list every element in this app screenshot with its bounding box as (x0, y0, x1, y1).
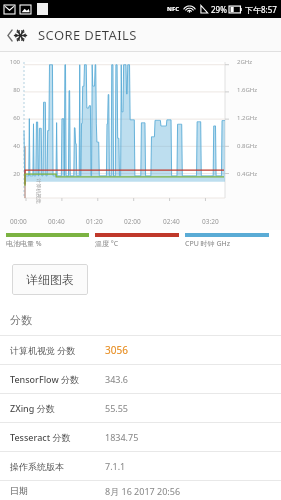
staticText: 2GHz (237, 58, 281, 66)
staticText: 00:40 (48, 217, 65, 226)
staticText: 计算机视觉 分数 (10, 344, 105, 356)
staticText: 01:20 (86, 217, 103, 226)
staticText: CPU 时钟 GHz (185, 239, 230, 249)
staticText: 电池电量 % (6, 239, 42, 249)
staticText: 计算机视觉 (35, 178, 41, 203)
staticText: 60 (0, 114, 20, 122)
staticText: 操作系统版本 (10, 461, 105, 472)
staticText: SCORE DETAILS (38, 26, 137, 44)
staticText: 1834.75 (105, 431, 139, 443)
staticText: 7.1.1 (105, 460, 126, 472)
staticText: 分数 (10, 313, 32, 327)
staticText: 02:00 (124, 217, 141, 226)
button[interactable]: Tesseract 分数 (0, 423, 281, 451)
button[interactable]: 日期 (0, 481, 281, 500)
staticText: Tesseract 分数 (10, 431, 105, 443)
staticText: TensorFlow 分数 (10, 373, 105, 385)
staticText: 29% (211, 4, 227, 15)
staticText: 80 (0, 86, 20, 94)
staticText: 温度 °C (95, 239, 119, 249)
button[interactable]: 计算机视觉 分数 (0, 336, 281, 364)
staticText: 3056 (105, 343, 128, 357)
staticText: 02:40 (163, 217, 180, 226)
staticText: 03:20 (202, 217, 219, 226)
button[interactable]: ZXing 分数 (0, 394, 281, 422)
staticText: 下午8:57 (245, 4, 277, 15)
button[interactable]: 详细图表 (12, 264, 88, 295)
staticText: 8月 16 2017 20:56 (105, 485, 181, 497)
staticText: 100 (0, 58, 20, 66)
staticText: 40 (0, 142, 20, 150)
staticText: 20 (0, 170, 20, 178)
staticText: 详细图表 (26, 272, 74, 287)
button[interactable]: TensorFlow 分数 (0, 365, 281, 393)
button[interactable]: 操作系统版本 (0, 452, 281, 480)
staticText: 0.4GHz (237, 170, 281, 178)
staticText: ZXing 分数 (10, 402, 105, 414)
staticText: 0.8GHz (237, 142, 281, 150)
staticText: 1.2GHz (237, 114, 281, 122)
staticText: 55.55 (105, 402, 129, 414)
staticText: 343.6 (105, 373, 129, 385)
staticText: 日期 (10, 485, 105, 496)
staticText: 00:00 (10, 217, 27, 226)
button[interactable]: Back (0, 18, 34, 52)
staticText: NFC (167, 5, 180, 13)
staticText: 1.6GHz (237, 86, 281, 94)
